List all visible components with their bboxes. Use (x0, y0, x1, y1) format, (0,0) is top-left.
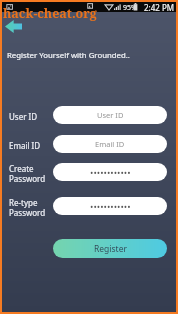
button[interactable]: Email ID (53, 135, 167, 153)
staticText: 2:42 PM (144, 2, 175, 12)
button[interactable]: •••••••••••• (53, 197, 167, 215)
button[interactable]: Back (2, 16, 24, 37)
staticText: Register Yourself with Grounded.. (7, 50, 130, 61)
button[interactable]: Register (53, 239, 167, 258)
staticText: Register (94, 243, 127, 255)
staticText: User ID (9, 111, 38, 122)
staticText: hack-cheat.org (3, 5, 97, 22)
staticText: Create Password (9, 163, 46, 184)
staticText: Email ID (9, 140, 41, 151)
staticText: 95% (123, 3, 137, 13)
button[interactable]: •••••••••••• (53, 163, 167, 181)
staticText: •••••••••••• (90, 200, 131, 212)
staticText: •••••••••••• (90, 166, 131, 178)
staticText: User ID (97, 110, 124, 120)
staticText: Re-type Password (9, 197, 46, 218)
staticText: Email ID (95, 139, 125, 149)
button[interactable]: User ID (53, 106, 167, 124)
